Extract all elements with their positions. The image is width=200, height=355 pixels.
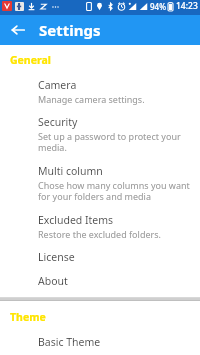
staticText: Manage camera settings.	[38, 93, 145, 105]
button[interactable]: Camera	[0, 73, 200, 110]
staticText: About	[38, 274, 68, 288]
staticText: General	[10, 53, 51, 67]
staticText: Chose how many columns you want for your…	[38, 179, 190, 203]
staticText: 14:23	[176, 0, 198, 12]
staticText: Excluded Items	[38, 213, 114, 227]
button[interactable]: Back	[5, 17, 31, 43]
staticText: Basic Theme	[38, 335, 101, 349]
staticText: Multi column	[38, 164, 103, 178]
staticText: Set up a password to protect your media.	[38, 130, 190, 154]
button[interactable]: Basic Theme	[0, 330, 200, 355]
staticText: Camera	[38, 78, 77, 92]
button[interactable]: Security	[0, 110, 200, 159]
staticText: License	[38, 250, 75, 264]
staticText: Security	[38, 115, 78, 129]
staticText: Restore the excluded folders.	[38, 228, 161, 240]
staticText: 94%	[150, 1, 166, 12]
button[interactable]: Excluded Items	[0, 208, 200, 245]
button[interactable]: Multi column	[0, 159, 200, 208]
staticText: Settings	[39, 20, 101, 40]
button[interactable]: License	[0, 245, 200, 269]
staticText: Theme	[10, 310, 46, 324]
button[interactable]: About	[0, 269, 200, 293]
